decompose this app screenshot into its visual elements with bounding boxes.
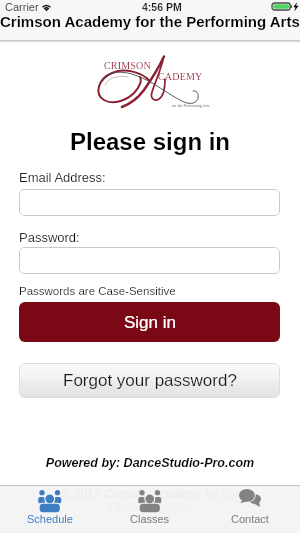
staticText: CADEMY (158, 71, 203, 82)
button[interactable] (19, 189, 280, 216)
staticText: Passwords are Case-Sensitive (19, 285, 176, 298)
staticText: 4:56 PM (142, 1, 182, 13)
staticText: Powered by: DanceStudio-Pro.com (0, 456, 300, 470)
button[interactable]: Forgot your password? (19, 363, 280, 398)
button[interactable]: Sign in (19, 302, 280, 342)
staticText: Crimson Academy for the Performing Arts (0, 13, 300, 30)
staticText: for the Performing Arts (172, 103, 210, 107)
staticText: © 2017 Crimson Academy for the (62, 487, 239, 500)
staticText: Schedule (27, 513, 73, 525)
staticText: Sign in (124, 313, 176, 332)
staticText: Performing Arts (109, 500, 192, 513)
staticText: Contact (231, 513, 269, 525)
button[interactable]: Schedule tab (0, 486, 100, 533)
staticText: Password: (19, 230, 80, 245)
button[interactable] (19, 247, 280, 274)
staticText: Classes (130, 513, 170, 525)
staticText: Email Address: (19, 170, 106, 185)
button[interactable]: Contact tab (200, 486, 300, 533)
staticText: CRIMSON (104, 60, 151, 71)
button[interactable]: Classes tab (100, 486, 200, 533)
staticText: Forgot your password? (63, 371, 237, 390)
staticText: Carrier (5, 1, 39, 13)
staticText: Please sign in (0, 128, 300, 155)
